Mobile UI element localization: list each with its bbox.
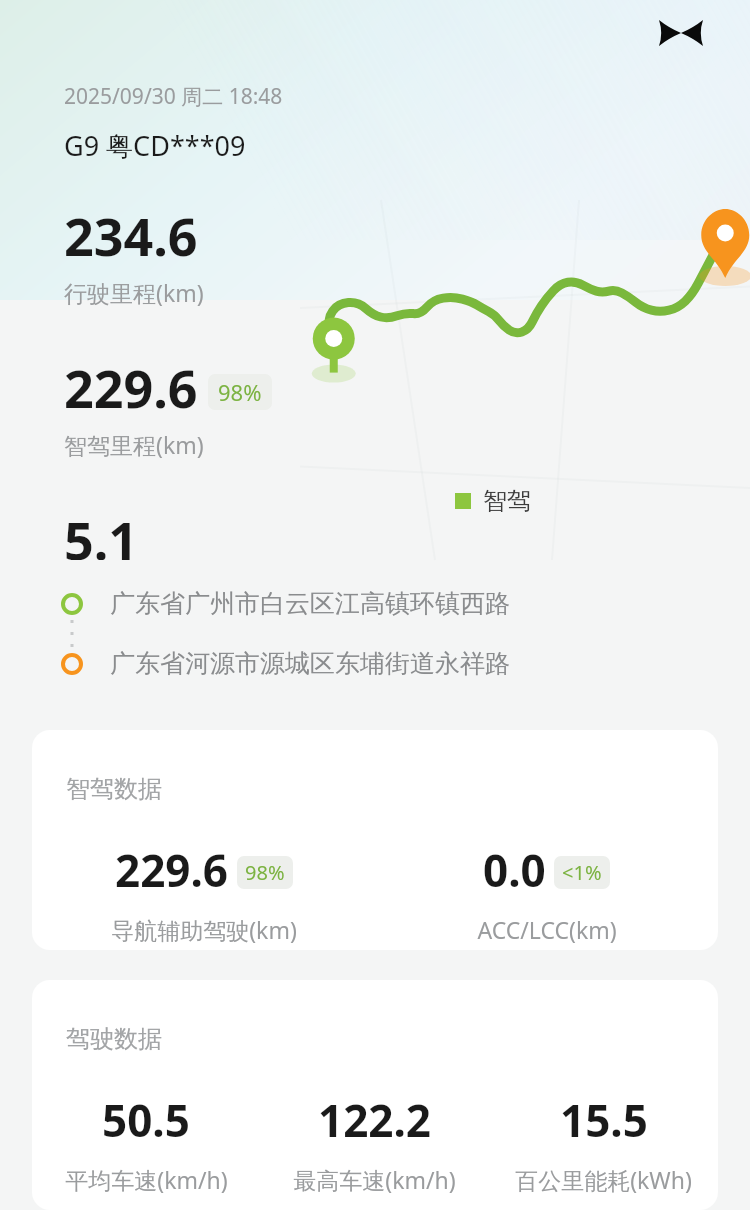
- staticText: 驾驶数据: [66, 1024, 162, 1054]
- staticText: 智驾: [483, 486, 531, 516]
- staticText: <1%: [562, 859, 602, 886]
- button[interactable]: 驾驶数据: [32, 980, 718, 1210]
- staticText: 2025/09/30 周二 18:48: [64, 82, 283, 111]
- staticText: 234.6: [64, 200, 198, 271]
- staticText: 智驾数据: [66, 774, 162, 804]
- staticText: 50.5: [102, 1090, 190, 1150]
- staticText: 百公里能耗(kWh): [515, 1164, 692, 1195]
- staticText: 5.1: [64, 504, 139, 560]
- staticText: 98%: [245, 859, 285, 886]
- staticText: 229.6: [64, 352, 198, 423]
- button[interactable]: XPeng logo: [658, 10, 704, 56]
- staticText: 122.2: [318, 1090, 432, 1150]
- staticText: ACC/LCC(km): [477, 914, 617, 945]
- staticText: 行驶里程(km): [64, 277, 204, 308]
- staticText: 229.6: [115, 840, 229, 900]
- staticText: 广东省广州市白云区江高镇环镇西路: [110, 588, 510, 619]
- staticText: G9 粤CD***09: [64, 127, 246, 164]
- staticText: 15.5: [560, 1090, 648, 1150]
- staticText: 平均车速(km/h): [65, 1164, 228, 1195]
- staticText: 广东省河源市源城区东埔街道永祥路: [110, 648, 510, 679]
- staticText: 最高车速(km/h): [293, 1164, 456, 1195]
- staticText: 0.0: [483, 840, 546, 900]
- staticText: 98%: [218, 377, 262, 407]
- staticText: 导航辅助驾驶(km): [111, 914, 297, 945]
- button[interactable]: 智驾数据: [32, 730, 718, 950]
- staticText: 智驾里程(km): [64, 429, 204, 460]
